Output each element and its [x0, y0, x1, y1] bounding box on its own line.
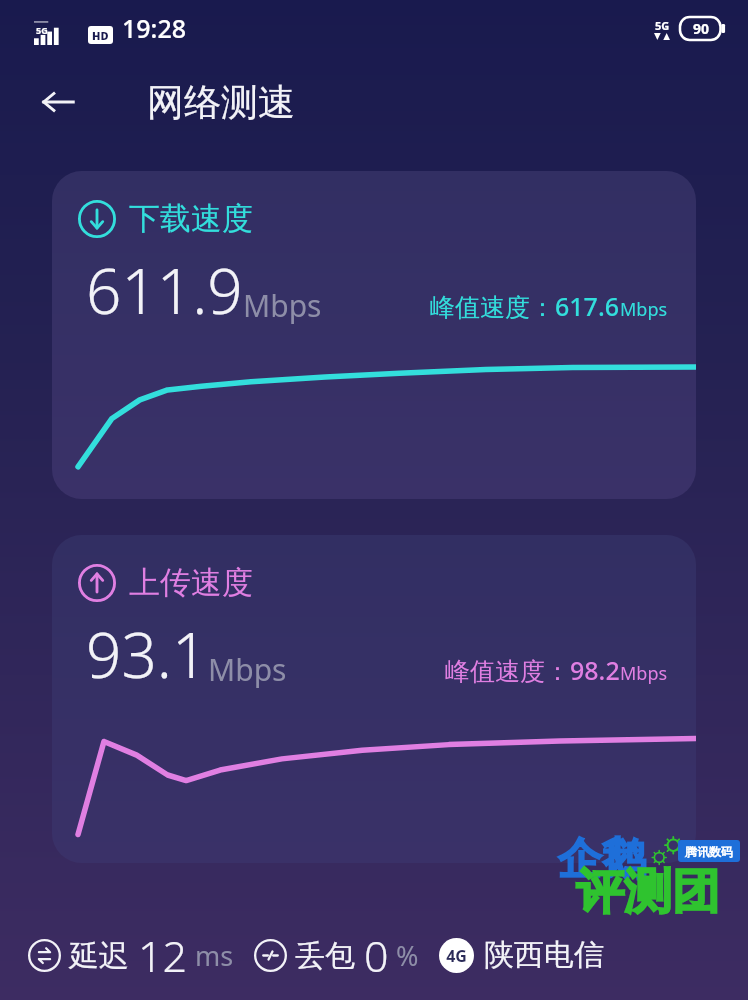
button[interactable]: 上传速度 — [52, 535, 696, 863]
staticText: 19:28 — [122, 11, 187, 45]
staticText: 峰值速度：98.2 — [445, 653, 620, 687]
staticText: 0 — [364, 926, 389, 985]
staticText: ms — [195, 937, 234, 974]
staticText: 延迟 — [69, 937, 129, 975]
staticText: 企鹅 — [558, 832, 646, 887]
staticText: 12 — [138, 926, 188, 985]
staticText: HD — [92, 28, 109, 43]
staticText: 上传速度 — [129, 563, 253, 602]
staticText: 5G — [36, 24, 48, 36]
staticText: 峰值速度：617.6 — [430, 289, 620, 323]
staticText: Mbps — [243, 285, 322, 326]
staticText: 611.9 — [86, 248, 243, 332]
button[interactable]: 4G — [439, 936, 604, 974]
staticText: Mbps — [620, 661, 668, 686]
staticText: 90 — [693, 19, 710, 38]
button[interactable]: 延迟 — [28, 926, 236, 985]
button[interactable]: 下载速度 — [52, 171, 696, 499]
staticText: 腾讯数码 — [685, 844, 733, 859]
button[interactable]: 丢包 — [254, 926, 419, 985]
staticText: 93.1 — [86, 612, 208, 696]
staticText: 5G — [655, 18, 670, 33]
staticText: 4G — [446, 945, 467, 967]
staticText: 陕西电信 — [484, 936, 604, 974]
staticText: % — [396, 937, 419, 974]
staticText: Mbps — [208, 649, 287, 690]
staticText: 评测团 — [576, 862, 720, 922]
staticText: Mbps — [620, 297, 668, 322]
staticText: 丢包 — [295, 937, 355, 975]
staticText: 下载速度 — [129, 199, 253, 238]
button[interactable]: Back — [26, 70, 90, 134]
staticText: 网络测速 — [147, 79, 295, 126]
